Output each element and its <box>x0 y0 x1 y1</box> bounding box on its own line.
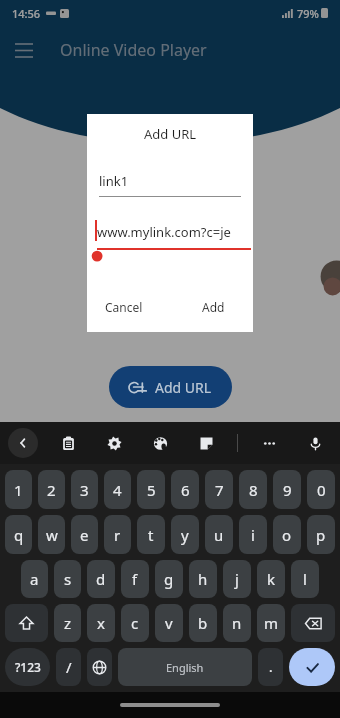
staticText: 4 <box>113 480 122 500</box>
button[interactable]: a <box>21 560 48 598</box>
button[interactable]: b <box>189 604 217 642</box>
staticText: k <box>267 569 276 589</box>
staticText: h <box>198 569 208 589</box>
staticText: g <box>164 569 174 589</box>
button[interactable]: 6 <box>171 470 199 509</box>
staticText: 7 <box>215 480 224 500</box>
button[interactable]: 2 <box>38 470 65 509</box>
button[interactable]: Enter <box>289 648 335 686</box>
button[interactable]: . <box>258 648 283 686</box>
button[interactable]: 9 <box>273 470 301 509</box>
staticText: a <box>30 569 39 589</box>
staticText: x <box>97 613 105 633</box>
button[interactable]: Add <box>194 292 233 322</box>
button[interactable]: h <box>189 560 217 598</box>
staticText: 0 <box>317 480 326 500</box>
button[interactable]: Change language <box>87 648 112 686</box>
staticText: r <box>114 525 121 545</box>
button[interactable]: t <box>137 515 165 554</box>
staticText: 3 <box>80 480 89 500</box>
button[interactable]: m <box>257 604 285 642</box>
staticText: n <box>232 613 242 633</box>
button[interactable]: Delete <box>291 604 335 642</box>
button[interactable]: x <box>87 604 115 642</box>
button[interactable]: Themes <box>145 428 175 458</box>
button[interactable]: o <box>273 515 301 554</box>
button[interactable]: English <box>118 648 252 686</box>
staticText: 14:56 <box>12 6 41 21</box>
staticText: y <box>181 525 189 545</box>
staticText: 79% <box>297 6 319 21</box>
staticText: z <box>64 613 72 633</box>
staticText: Cancel <box>105 299 143 315</box>
staticText: u <box>214 525 224 545</box>
button[interactable]: 1 <box>5 470 32 509</box>
staticText: link1 <box>99 172 129 190</box>
button[interactable]: g <box>155 560 183 598</box>
button[interactable]: q <box>5 515 32 554</box>
button[interactable]: p <box>307 515 335 554</box>
staticText: i <box>251 525 255 545</box>
button[interactable]: Settings <box>99 428 129 458</box>
button[interactable]: k <box>257 560 285 598</box>
staticText: p <box>316 525 326 545</box>
button[interactable]: w <box>38 515 65 554</box>
button[interactable]: s <box>54 560 81 598</box>
button[interactable]: u <box>205 515 233 554</box>
button[interactable]: r <box>104 515 131 554</box>
button[interactable]: 4 <box>104 470 131 509</box>
button[interactable]: Add URL <box>109 366 232 408</box>
button[interactable]: 3 <box>71 470 98 509</box>
button[interactable]: Open navigation menu <box>0 26 48 74</box>
staticText: Online Video Player <box>60 39 207 61</box>
button[interactable]: d <box>87 560 115 598</box>
staticText: 9 <box>283 480 292 500</box>
button[interactable]: 5 <box>137 470 165 509</box>
button[interactable]: More options <box>254 428 284 458</box>
button[interactable]: 0 <box>307 470 335 509</box>
staticText: www.mylink.com?c=je <box>97 223 231 241</box>
staticText: ?123 <box>15 659 41 675</box>
button[interactable]: i <box>239 515 267 554</box>
button[interactable]: Clipboard <box>53 428 83 458</box>
staticText: w <box>46 525 58 545</box>
button[interactable]: Stickers <box>191 428 221 458</box>
staticText: . <box>269 658 273 676</box>
button[interactable]: 7 <box>205 470 233 509</box>
button[interactable]: e <box>71 515 98 554</box>
button[interactable]: 8 <box>239 470 267 509</box>
staticText: l <box>303 569 307 589</box>
button[interactable]: z <box>54 604 81 642</box>
staticText: t <box>148 525 154 545</box>
button[interactable]: Back <box>8 428 38 458</box>
staticText: f <box>132 569 138 589</box>
staticText: s <box>64 569 72 589</box>
staticText: q <box>14 525 24 545</box>
button[interactable]: / <box>56 648 81 686</box>
staticText: m <box>264 613 279 633</box>
button[interactable]: v <box>155 604 183 642</box>
staticText: Add URL <box>144 125 197 143</box>
button[interactable]: Cancel <box>97 292 151 322</box>
button[interactable]: n <box>223 604 251 642</box>
staticText: Add <box>202 299 225 315</box>
staticText: c <box>131 613 139 633</box>
staticText: 2 <box>47 480 56 500</box>
button[interactable]: c <box>121 604 149 642</box>
button[interactable]: l <box>291 560 319 598</box>
staticText: e <box>80 525 89 545</box>
staticText: / <box>66 657 72 677</box>
staticText: o <box>282 525 292 545</box>
button[interactable]: f <box>121 560 149 598</box>
button[interactable]: Voice input <box>300 428 330 458</box>
button[interactable]: y <box>171 515 199 554</box>
button[interactable]: ?123 <box>5 648 50 686</box>
staticText: v <box>165 613 173 633</box>
button[interactable]: Shift <box>5 604 48 642</box>
staticText: Add URL <box>155 378 212 397</box>
staticText: d <box>96 569 106 589</box>
staticText: b <box>198 613 208 633</box>
staticText: 5 <box>147 480 156 500</box>
staticText: 1 <box>14 480 23 500</box>
button[interactable]: j <box>223 560 251 598</box>
